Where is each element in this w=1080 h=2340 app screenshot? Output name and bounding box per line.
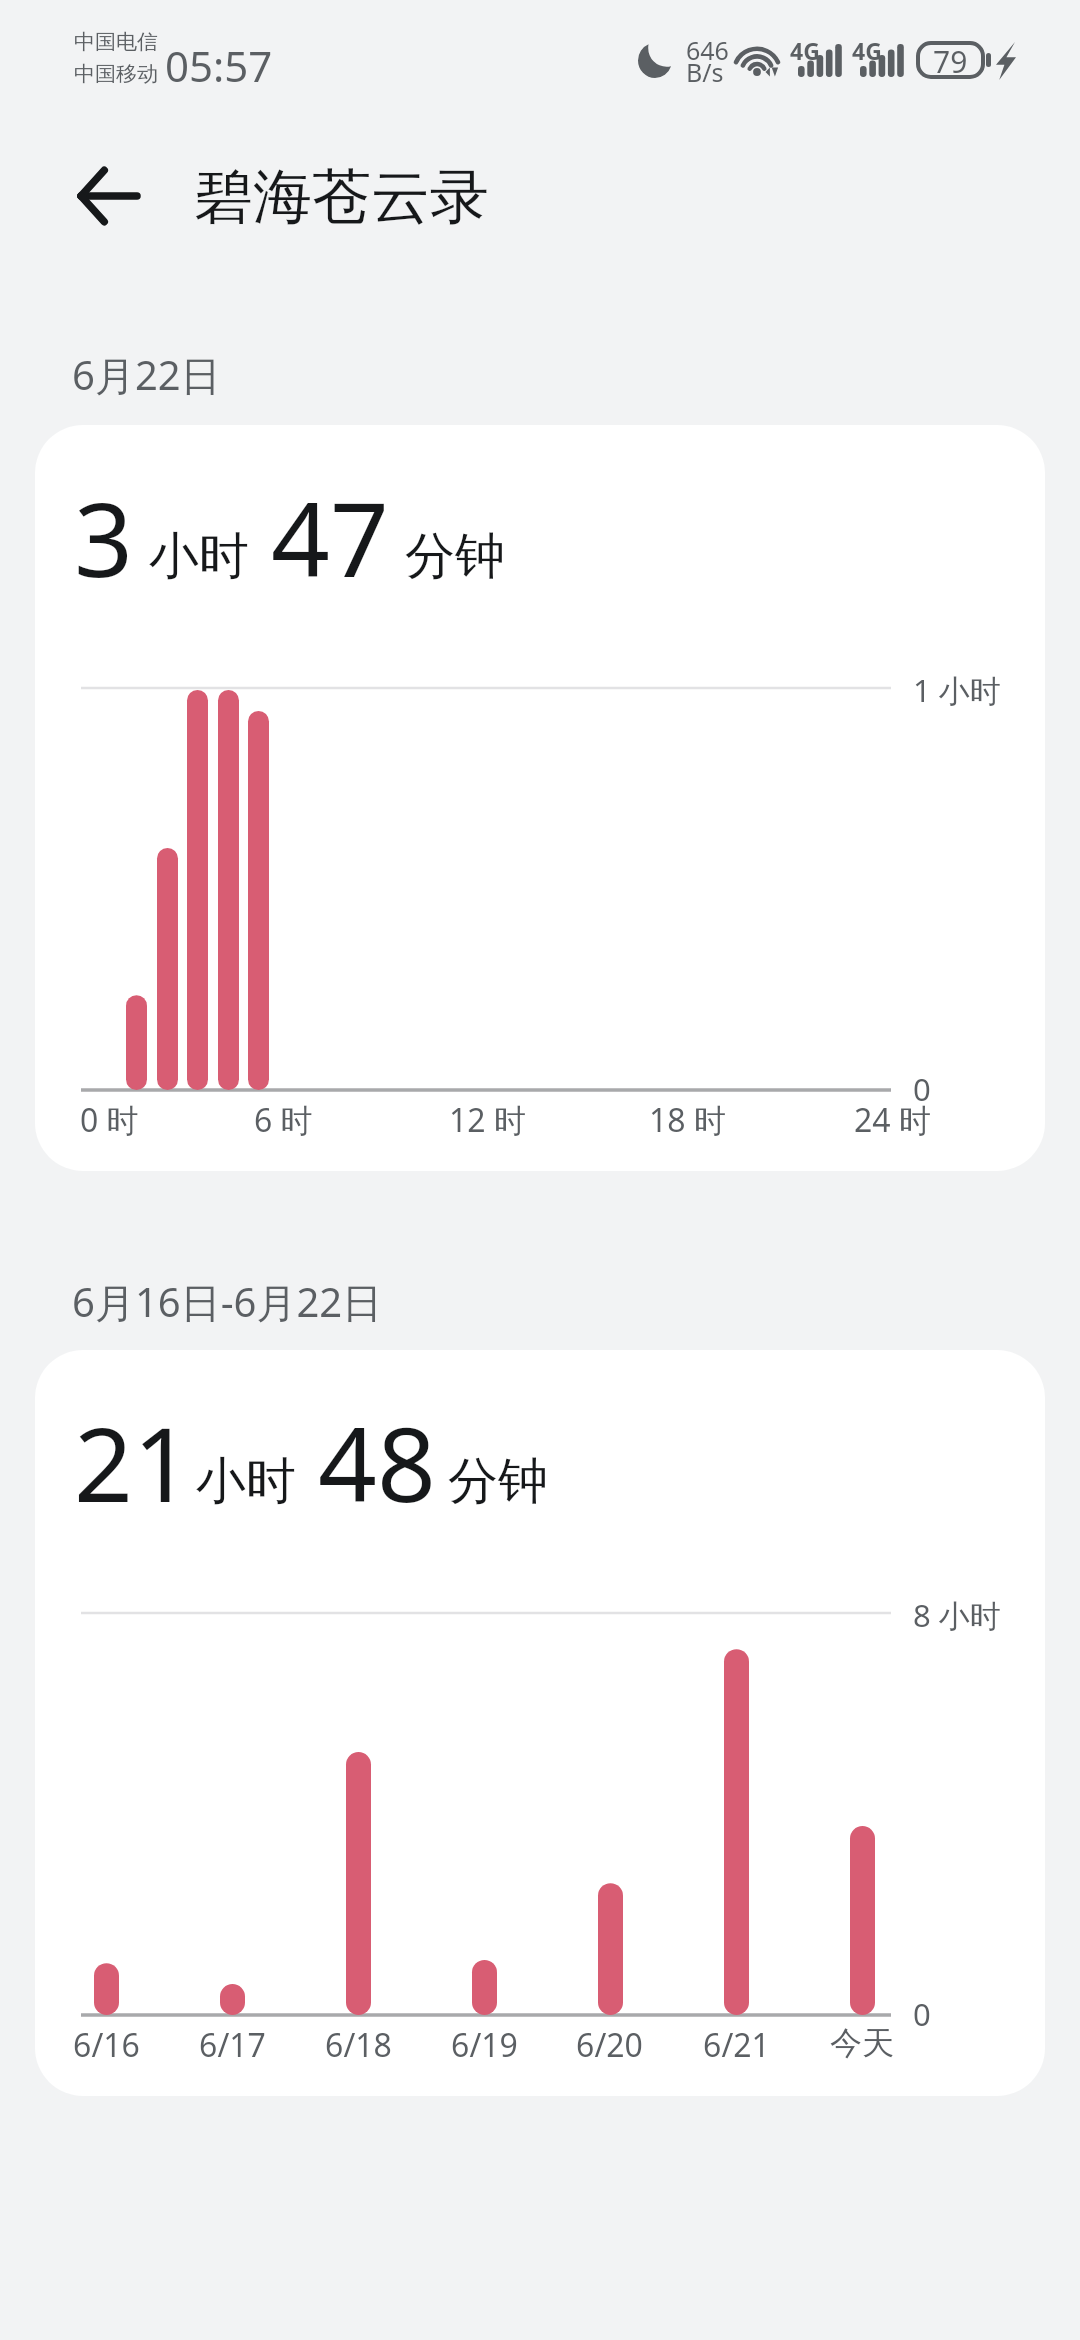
staticText: 中国移动 — [74, 61, 158, 87]
staticText: 0 时 — [80, 1098, 139, 1142]
staticText: 小时 — [149, 525, 249, 588]
staticText: 6/19 — [451, 2023, 518, 2067]
staticText: 8 小时 — [913, 1594, 1001, 1636]
staticText: 21 — [74, 1392, 192, 1532]
staticText: 3 — [74, 467, 133, 607]
staticText: 6月22日 — [72, 347, 221, 402]
staticText: 6/16 — [73, 2023, 140, 2067]
staticText: 4G — [790, 35, 820, 66]
staticText: 分钟 — [448, 1450, 548, 1513]
staticText: 6/17 — [199, 2023, 266, 2067]
staticText: 中国电信 — [74, 29, 158, 55]
staticText: 6/18 — [325, 2023, 392, 2067]
staticText: 05:57 — [165, 37, 273, 94]
staticText: 1 小时 — [913, 669, 1001, 711]
staticText: 小时 — [196, 1450, 296, 1513]
button[interactable]: 3 — [35, 425, 1045, 1171]
staticText: 6/21 — [703, 2023, 770, 2067]
staticText: 今天 — [830, 2023, 894, 2063]
staticText: 24 时 — [854, 1098, 931, 1142]
staticText: 4G — [852, 35, 882, 66]
staticText: 6月16日-6月22日 — [72, 1274, 383, 1329]
staticText: 0 — [913, 1993, 931, 2035]
staticText: 6 时 — [254, 1098, 313, 1142]
staticText: 18 时 — [649, 1098, 726, 1142]
staticText: B/s — [686, 55, 724, 89]
staticText: 12 时 — [449, 1098, 526, 1142]
staticText: 0 — [913, 1068, 931, 1110]
button[interactable]: Back — [60, 148, 156, 244]
staticText: 48 — [318, 1392, 436, 1532]
staticText: 79 — [933, 41, 968, 79]
staticText: 碧海苍云录 — [194, 160, 489, 234]
staticText: 646 — [686, 33, 729, 67]
staticText: 47 — [271, 467, 389, 607]
button[interactable]: 21 — [35, 1350, 1045, 2096]
staticText: 分钟 — [405, 525, 505, 588]
staticText: 6/20 — [576, 2023, 643, 2067]
